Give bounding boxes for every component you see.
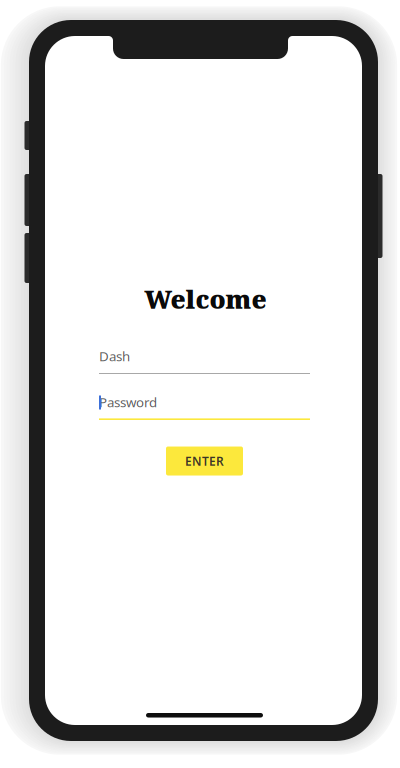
button[interactable]: Password xyxy=(99,395,310,420)
button[interactable]: Dash xyxy=(99,349,310,374)
staticText: Welcome xyxy=(144,282,266,316)
button[interactable]: ENTER xyxy=(166,446,243,475)
staticText: ENTER xyxy=(185,453,224,469)
staticText: Password xyxy=(99,393,157,411)
staticText: Dash xyxy=(99,347,130,365)
